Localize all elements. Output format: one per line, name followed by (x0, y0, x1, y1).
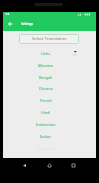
staticText: Chinese (39, 86, 53, 91)
staticText: Hindi (41, 110, 51, 115)
staticText: Italian (40, 134, 51, 139)
button[interactable]: Recent apps (67, 158, 79, 172)
staticText: Settings (21, 22, 34, 26)
button[interactable]: Settings (21, 21, 34, 27)
button[interactable]: Chinese (3, 82, 96, 94)
staticText: French (40, 98, 52, 103)
button[interactable]: Navigate up (5, 19, 14, 28)
button[interactable]: Back (18, 158, 30, 172)
staticText: Urdu (41, 51, 50, 56)
staticText: Indonesian (36, 122, 56, 127)
button[interactable]: Albanian (3, 59, 96, 71)
button[interactable]: Select Translation (19, 34, 79, 44)
button[interactable]: Urdu (3, 47, 96, 59)
button[interactable]: French (3, 94, 96, 106)
staticText: Albanian (38, 63, 54, 68)
button[interactable]: Italian (3, 130, 96, 142)
staticText: Japanese (38, 146, 54, 151)
button[interactable]: Bengali (3, 71, 96, 83)
staticText: Select Translation (32, 36, 67, 42)
button[interactable]: Hindi (3, 106, 96, 118)
staticText: Bengali (39, 75, 52, 80)
button[interactable]: Home (43, 158, 55, 172)
button[interactable]: Indonesian (3, 118, 96, 130)
